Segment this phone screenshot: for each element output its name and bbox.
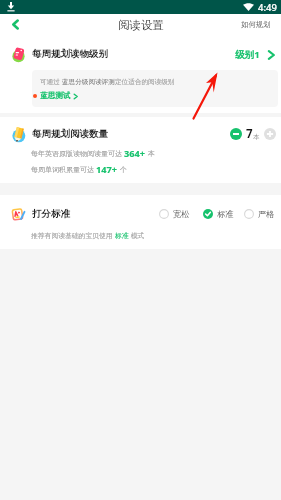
staticText: 模式 [129, 231, 145, 240]
staticText: 推荐有阅读基础的宝贝使用 [31, 231, 115, 240]
staticText: 阅读设置 [118, 18, 164, 32]
staticText: 级别1 [235, 48, 260, 61]
staticText: 如何规划 [241, 20, 271, 29]
button[interactable]: Back [0, 14, 30, 35]
staticText: 每周单词积累量可达 [31, 165, 96, 175]
staticText: 个 [118, 165, 127, 175]
staticText: 每周规划阅读数量 [32, 128, 108, 140]
staticText: 147+ [96, 163, 118, 176]
button[interactable]: 宽松 [159, 209, 190, 219]
button[interactable]: 级别1 [231, 45, 278, 64]
staticText: 每周规划读物级别 [32, 48, 108, 60]
button[interactable]: 标准 [203, 209, 234, 219]
staticText: 可通过 [40, 77, 62, 86]
button[interactable]: 蓝思测试 [32, 91, 79, 101]
button[interactable]: 如何规划 [241, 20, 271, 29]
staticText: 7 [246, 126, 253, 142]
staticText: 4:49 [258, 1, 277, 14]
staticText: 标准 [217, 209, 234, 219]
staticText: 本 [253, 133, 260, 141]
staticText: 宽松 [173, 209, 190, 219]
staticText: 打分标准 [32, 208, 70, 220]
staticText: 本 [146, 149, 155, 159]
button[interactable]: Increase [264, 128, 276, 140]
staticText: 每年英语原版读物阅读量可达 [31, 149, 124, 159]
staticText: 定位适合的阅读级别 [115, 78, 175, 86]
staticText: 严格 [258, 209, 275, 219]
button[interactable]: Decrease [230, 128, 242, 140]
staticText: 蓝思测试 [40, 91, 71, 101]
staticText: 蓝思分级阅读评测 [62, 78, 115, 86]
button[interactable]: 严格 [244, 209, 275, 219]
staticText: 标准 [115, 231, 129, 240]
staticText: 364+ [124, 147, 146, 160]
